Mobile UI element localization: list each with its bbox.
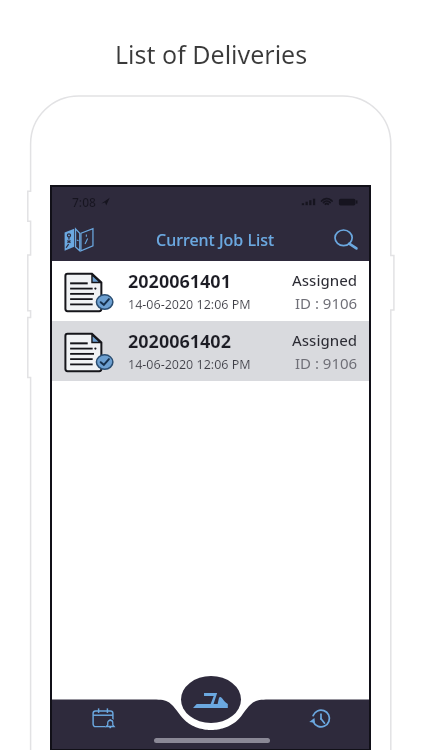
staticText: List of Deliveries [115,37,308,71]
button[interactable]: Search [330,225,362,257]
button[interactable]: Schedule [83,697,123,737]
button[interactable]: 2020061402 [52,321,369,381]
button[interactable]: History [300,698,340,738]
button[interactable]: New delivery [181,676,241,723]
staticText: Current Job List [156,229,275,251]
button[interactable]: Map [59,223,99,263]
staticText: 14-06-2020 12:06 PM [128,296,251,313]
staticText: ID : 9106 [295,353,358,373]
staticText: ID : 9106 [295,293,358,313]
staticText: Assigned [292,270,358,290]
staticText: 2020061401 [128,269,231,294]
staticText: 7:08 [72,194,96,210]
staticText: 2020061402 [128,329,231,354]
staticText: 14-06-2020 12:06 PM [128,356,251,373]
button[interactable]: 2020061401 [52,261,369,321]
staticText: Assigned [292,330,358,350]
